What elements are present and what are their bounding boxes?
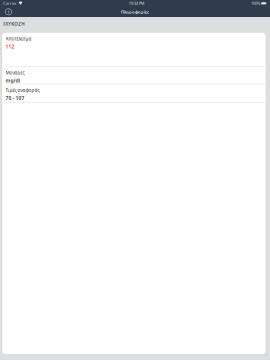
staticText: Carrier <box>3 1 17 6</box>
staticText: Τιμές αναφοράς <box>6 87 40 93</box>
staticText: mg/dl <box>6 77 20 84</box>
staticText: 10:34 PM <box>129 1 145 6</box>
staticText: Πληροφορίες <box>121 9 149 15</box>
button[interactable]: Info <box>0 7 15 16</box>
staticText: ΓΛΥΚΟΖΗ <box>3 21 24 27</box>
staticText: Μονάδες <box>6 70 25 76</box>
staticText: 100% <box>251 1 260 6</box>
staticText: 70 - 107 <box>6 95 25 101</box>
staticText: Αποτέλεσμα <box>6 36 32 42</box>
staticText: 112 <box>6 43 15 50</box>
